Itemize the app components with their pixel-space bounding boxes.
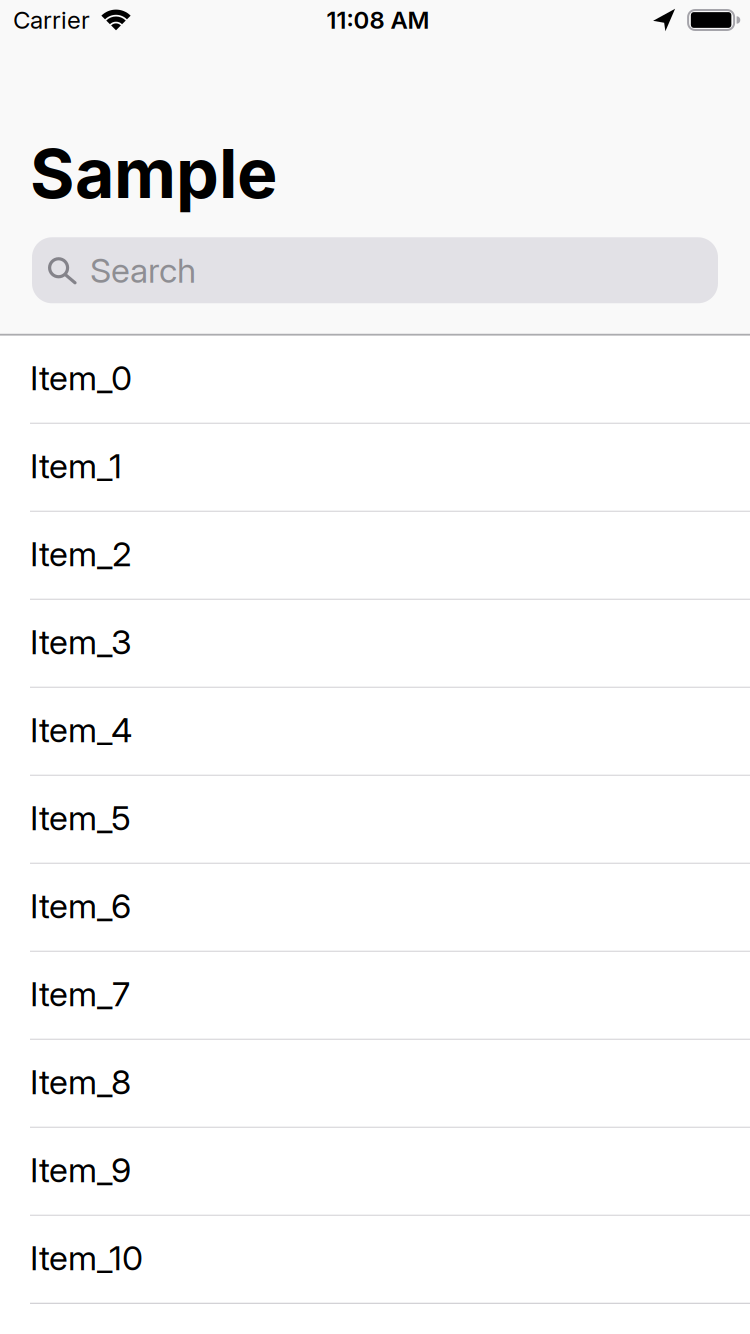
staticText: Item_0 (30, 357, 132, 398)
staticText: Item_9 (30, 1149, 131, 1190)
button[interactable]: Item_1 (0, 424, 750, 512)
staticText: Item_7 (30, 973, 130, 1014)
staticText: 11:08 AM (326, 5, 429, 34)
button[interactable]: Item_9 (0, 1128, 750, 1216)
staticText: Sample (30, 132, 278, 214)
button[interactable]: Item_0 (0, 336, 750, 424)
staticText: Item_1 (30, 445, 122, 486)
button[interactable]: Item_4 (0, 688, 750, 776)
staticText: Item_3 (30, 621, 132, 662)
button[interactable]: Search (32, 237, 718, 303)
button[interactable]: Item_8 (0, 1040, 750, 1128)
button[interactable]: Item_6 (0, 864, 750, 952)
button[interactable]: Item_3 (0, 600, 750, 688)
button[interactable]: Item_7 (0, 952, 750, 1040)
button[interactable]: Item_5 (0, 776, 750, 864)
staticText: Search (90, 250, 196, 291)
button[interactable]: Item_10 (0, 1216, 750, 1304)
staticText: Item_10 (30, 1237, 143, 1278)
staticText: Item_8 (30, 1061, 131, 1102)
staticText: Item_2 (30, 533, 132, 574)
staticText: Item_5 (30, 797, 131, 838)
button[interactable]: Item_2 (0, 512, 750, 600)
staticText: Item_6 (30, 885, 131, 926)
staticText: Item_4 (30, 709, 132, 750)
staticText: Carrier (13, 5, 90, 34)
